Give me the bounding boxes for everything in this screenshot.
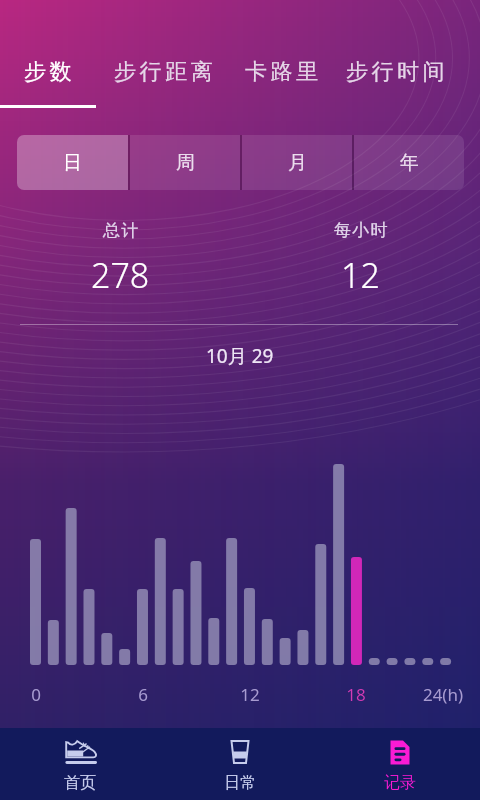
button[interactable]: 日 — [17, 135, 128, 190]
button[interactable]: 月 — [242, 135, 352, 190]
button[interactable]: 记录 — [320, 735, 480, 793]
staticText: 年 — [400, 151, 419, 175]
button[interactable]: 卡路里 — [232, 0, 334, 110]
staticText: 10月 29 — [206, 343, 274, 369]
staticText: 0 — [0, 683, 76, 706]
staticText: 周 — [176, 151, 195, 175]
staticText: 总计 — [103, 220, 140, 241]
staticText: 日常 — [224, 773, 256, 793]
button[interactable]: 步数 — [2, 0, 98, 110]
button[interactable]: 年 — [354, 135, 464, 190]
staticText: 步数 — [24, 58, 76, 86]
button[interactable]: 周 — [130, 135, 240, 190]
staticText: 18 — [316, 683, 396, 706]
staticText: 每小时 — [334, 220, 389, 241]
staticText: 记录 — [384, 773, 416, 793]
button[interactable]: 步行距离 — [98, 0, 232, 110]
button[interactable]: 步行时间 — [334, 0, 460, 110]
staticText: 24(h) — [403, 683, 480, 706]
staticText: 首页 — [64, 773, 96, 793]
staticText: 月 — [288, 151, 307, 175]
staticText: 卡路里 — [245, 58, 322, 86]
staticText: 6 — [103, 683, 183, 706]
staticText: 278 — [91, 252, 150, 298]
staticText: 步行时间 — [346, 58, 449, 86]
button[interactable]: 日常 — [160, 735, 320, 793]
staticText: 日 — [63, 151, 82, 175]
staticText: 12 — [341, 252, 380, 298]
staticText: 步行距离 — [114, 58, 217, 86]
button[interactable]: 首页 — [0, 735, 160, 793]
staticText: 12 — [210, 683, 290, 706]
